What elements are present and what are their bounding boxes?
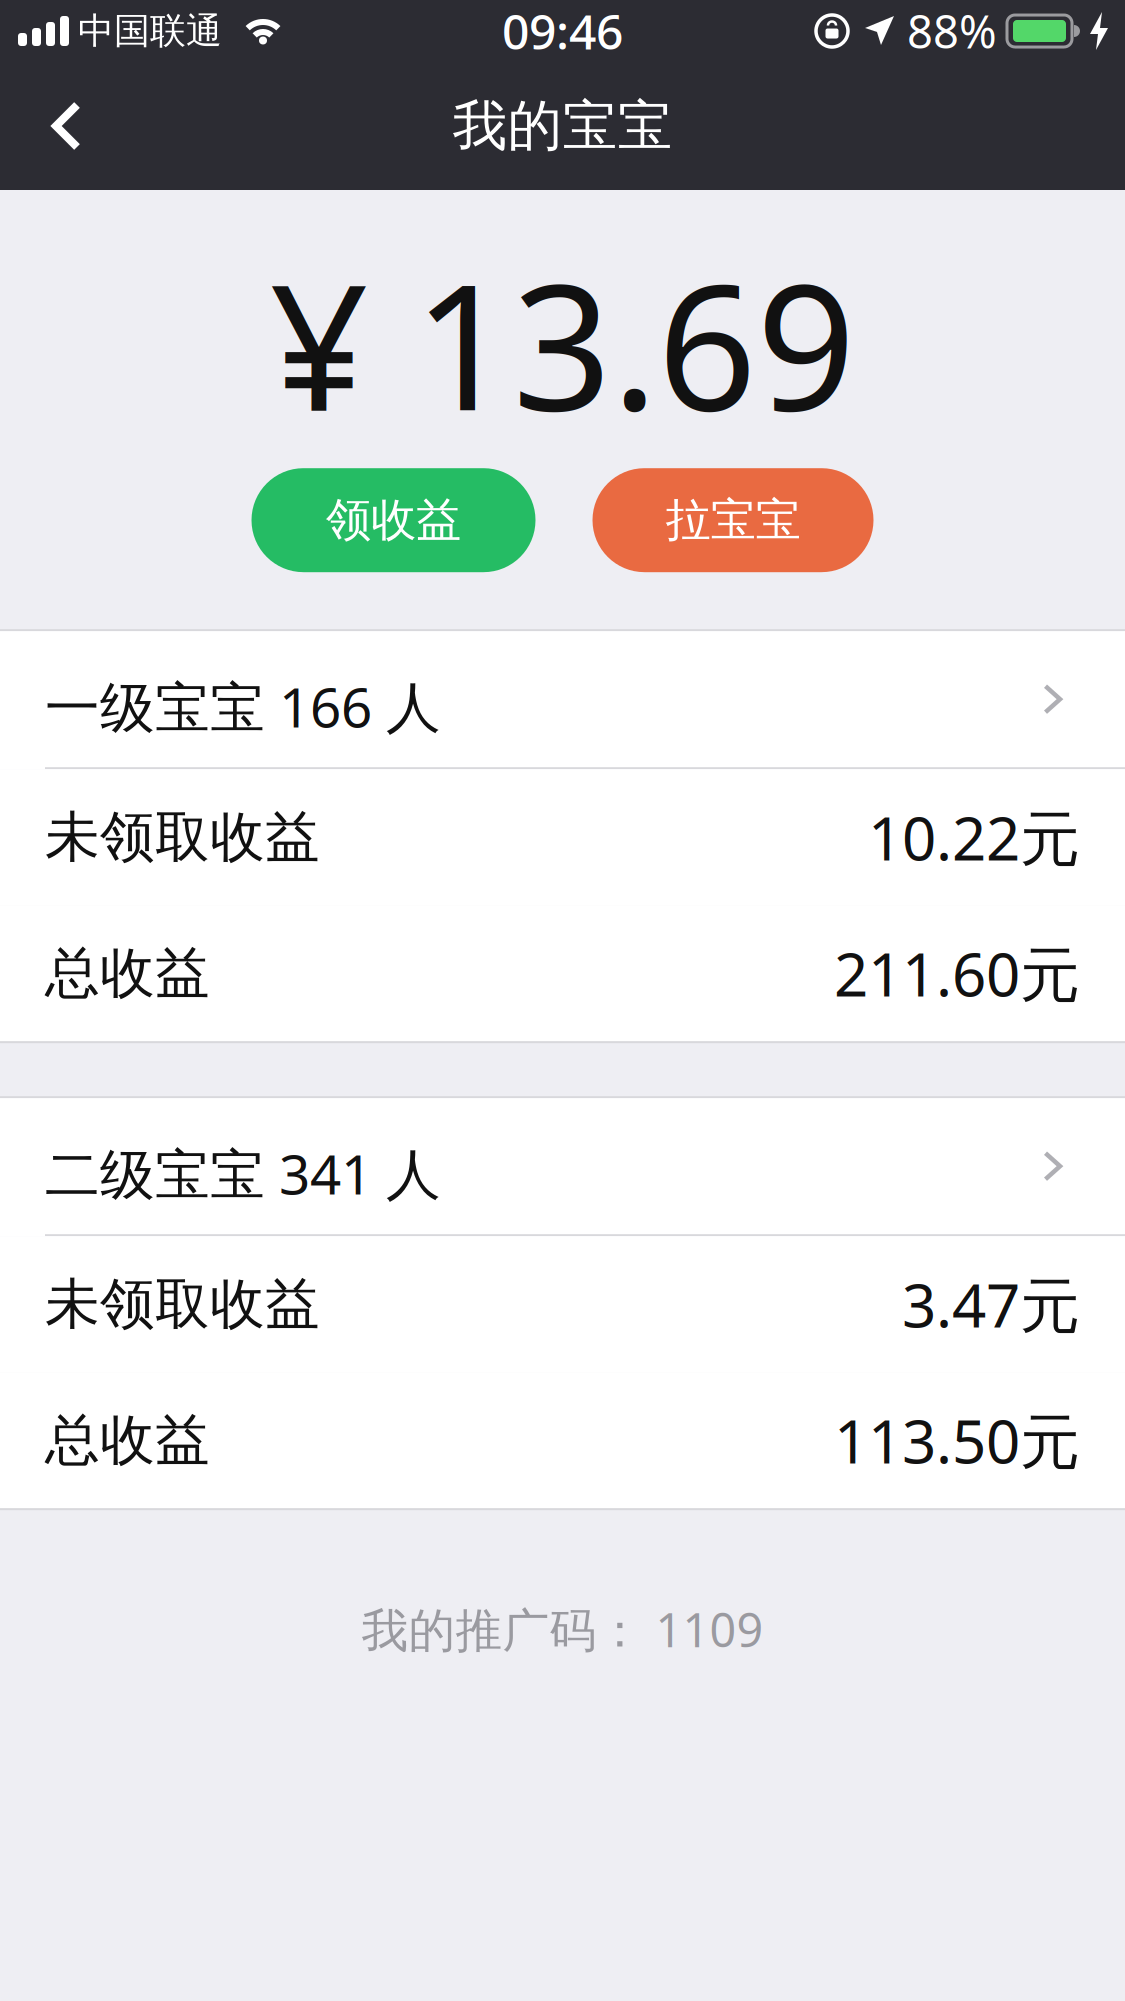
button[interactable]: Back	[0, 101, 81, 151]
staticText: 我的推广码： 1109	[361, 1598, 763, 1660]
staticText: 我的宝宝	[452, 92, 672, 159]
staticText: 3.47元	[902, 1264, 1080, 1344]
staticText: 211.60元	[834, 933, 1080, 1013]
staticText: 中国联通	[78, 9, 222, 53]
staticText: 一级宝宝 166 人	[45, 670, 441, 742]
staticText: 领收益	[326, 492, 461, 548]
button[interactable]: 二级宝宝 341 人	[0, 1098, 1125, 1234]
button[interactable]: 拉宝宝	[592, 468, 873, 572]
button[interactable]: 一级宝宝 166 人	[0, 631, 1125, 767]
staticText: 总收益	[45, 1407, 210, 1474]
staticText: 09:46	[502, 0, 623, 63]
button[interactable]: 领收益	[251, 468, 535, 572]
staticText: ¥ 13.69	[269, 228, 855, 458]
staticText: 二级宝宝 341 人	[45, 1137, 441, 1209]
staticText: 88%	[907, 1, 997, 61]
staticText: 未领取收益	[45, 1271, 320, 1338]
staticText: 10.22元	[868, 797, 1080, 877]
staticText: 113.50元	[834, 1400, 1080, 1480]
staticText: 未领取收益	[45, 804, 320, 871]
staticText: 拉宝宝	[665, 492, 800, 548]
staticText: 总收益	[45, 940, 210, 1007]
